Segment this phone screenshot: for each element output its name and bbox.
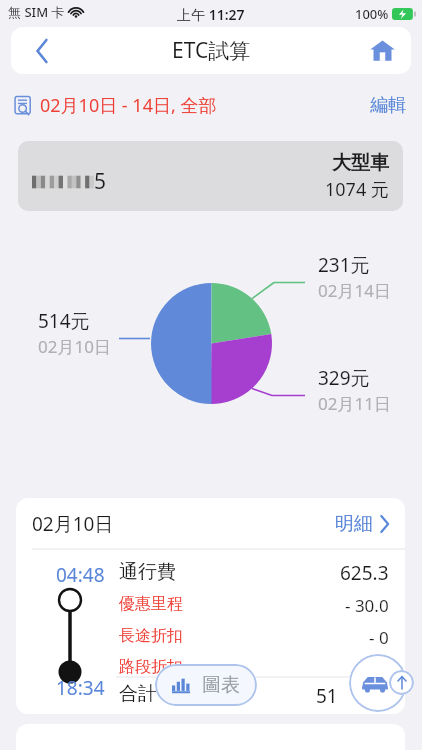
staticText: 02月10日 — [38, 335, 111, 358]
button[interactable]: 編輯 — [370, 94, 406, 117]
staticText: ETC試算 — [172, 36, 251, 65]
staticText: 通行費 — [119, 560, 176, 584]
staticText: 18:34 — [56, 675, 105, 701]
staticText: - 30.0 — [345, 594, 389, 617]
staticText: 625.3 — [340, 560, 389, 586]
staticText: 無 SIM 卡 — [8, 3, 65, 21]
staticText: 02月10日 - 14日, 全部 — [40, 93, 217, 118]
staticText: 329元 — [318, 365, 370, 391]
button[interactable]: 5 — [18, 141, 403, 211]
staticText: 編輯 — [370, 94, 406, 117]
staticText: 231元 — [318, 252, 370, 278]
staticText: 圖表 — [202, 673, 240, 697]
staticText: 優惠里程 — [119, 594, 183, 614]
button[interactable]: 02月10日 - 14日, 全部 — [14, 93, 217, 118]
staticText: 長途折扣 — [119, 626, 183, 646]
button[interactable]: Scroll to top — [389, 670, 414, 695]
button[interactable]: 02月10日 — [16, 498, 405, 549]
staticText: 路段折扣 — [119, 657, 183, 677]
staticText: - 0 — [369, 626, 389, 649]
staticText: 1074 元 — [325, 177, 389, 202]
staticText: 514元 — [38, 308, 90, 334]
button[interactable]: Vehicle — [349, 654, 407, 712]
staticText: 02月14日 — [318, 279, 391, 302]
button[interactable]: Home — [353, 27, 411, 74]
staticText: 51 — [316, 683, 338, 709]
staticText: 5 — [94, 167, 107, 196]
staticText: 100% — [355, 5, 389, 23]
staticText: 02月10日 — [32, 511, 114, 537]
staticText: 02月11日 — [318, 392, 391, 415]
staticText: 04:48 — [56, 562, 105, 588]
staticText: 明細 — [335, 512, 373, 536]
button[interactable]: Back — [11, 27, 73, 74]
button[interactable]: 圖表 — [155, 664, 257, 706]
staticText: 合計 — [119, 682, 157, 706]
staticText: 大型車 — [332, 151, 389, 175]
staticText: 上午 11:27 — [177, 5, 245, 24]
